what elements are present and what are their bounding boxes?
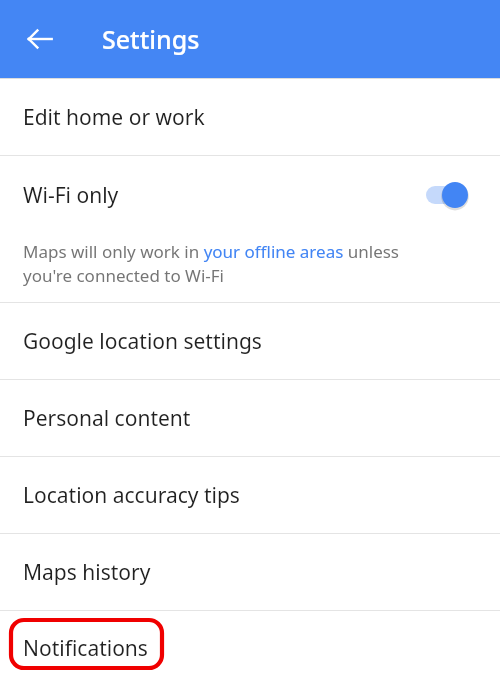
staticText: Notifications <box>23 634 148 663</box>
staticText: Maps will only work in your offline area… <box>23 240 442 287</box>
button[interactable]: Notifications <box>0 611 500 686</box>
staticText: Maps history <box>23 558 151 587</box>
staticText: Google location settings <box>23 327 262 356</box>
button[interactable]: Wi-Fi only <box>0 156 500 234</box>
staticText: Settings <box>102 22 200 56</box>
staticText: Personal content <box>23 404 191 433</box>
button[interactable]: Personal content <box>0 380 500 456</box>
button[interactable]: Back <box>16 15 64 63</box>
staticText: Edit home or work <box>23 103 205 132</box>
staticText: Location accuracy tips <box>23 481 240 510</box>
button[interactable]: Location accuracy tips <box>0 457 500 533</box>
button[interactable]: Wi-Fi only toggle <box>426 175 482 215</box>
button[interactable]: Edit home or work <box>0 79 500 155</box>
button[interactable]: Google location settings <box>0 303 500 379</box>
staticText: Wi-Fi only <box>23 181 119 210</box>
button[interactable]: Maps history <box>0 534 500 610</box>
